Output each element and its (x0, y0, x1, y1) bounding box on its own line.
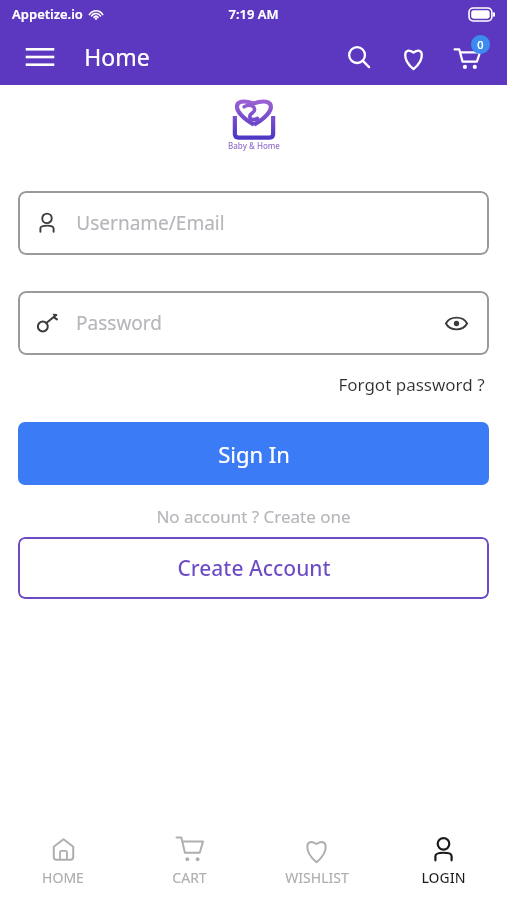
button[interactable]: Search (337, 35, 381, 79)
staticText: CART (172, 868, 207, 887)
button[interactable]: Open navigation menu (18, 35, 62, 79)
staticText: WISHLIST (285, 868, 349, 887)
staticText: Home (84, 41, 150, 72)
button[interactable]: Cart, 0 items (443, 33, 491, 81)
button[interactable]: CART (126, 822, 253, 900)
staticText: 0 (477, 37, 484, 52)
button[interactable]: LOGIN (380, 822, 507, 900)
button[interactable]: Username/Email (18, 191, 489, 255)
staticText: Sign In (218, 439, 290, 469)
staticText: HOME (42, 868, 84, 887)
staticText: Password (76, 310, 162, 336)
staticText: Create Account (177, 554, 331, 583)
staticText: Username/Email (76, 210, 225, 236)
button[interactable]: Password (18, 291, 489, 355)
button[interactable]: Wishlist (391, 35, 435, 79)
button[interactable]: Forgot password ? (334, 369, 489, 400)
button[interactable]: Show password (441, 308, 471, 338)
staticText: 7:19 AM (228, 5, 279, 23)
staticText: LOGIN (421, 868, 466, 887)
button[interactable]: HOME (0, 822, 126, 900)
staticText: Appetize.io (12, 5, 83, 23)
staticText: Baby & Home (228, 140, 280, 151)
staticText: No account ? Create one (156, 505, 351, 528)
button[interactable]: WISHLIST (253, 822, 380, 900)
button[interactable]: Create Account (18, 537, 489, 599)
staticText: Forgot password ? (338, 373, 485, 396)
button[interactable]: Sign In (18, 422, 489, 485)
